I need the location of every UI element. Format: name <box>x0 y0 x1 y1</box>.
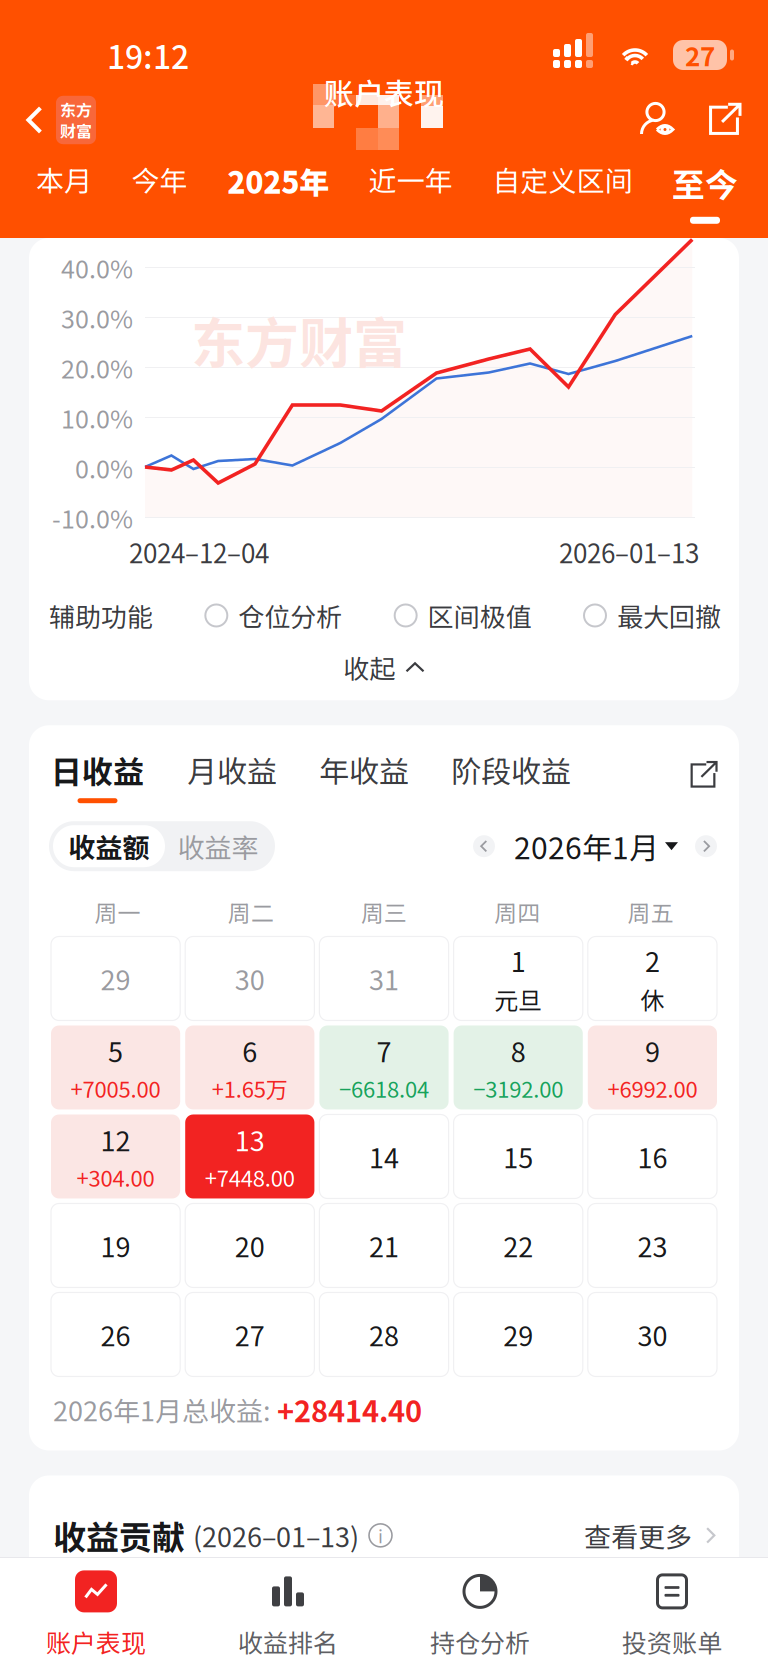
button[interactable]: 5 <box>51 1025 180 1109</box>
staticText: 收益排名 <box>238 1623 338 1660</box>
staticText: 今年 <box>132 159 188 199</box>
staticText: −3192.00 <box>473 1072 563 1104</box>
staticText: 元旦 <box>494 982 542 1016</box>
staticText: 2024–12–04 <box>129 533 269 571</box>
staticText: −6618.04 <box>339 1072 429 1104</box>
button[interactable]: 查看更多 <box>584 1516 719 1555</box>
staticText: 20 <box>235 1226 265 1265</box>
staticText: 6 <box>242 1031 257 1070</box>
button[interactable]: 19 <box>51 1203 180 1287</box>
button[interactable]: 12 <box>51 1114 180 1198</box>
button[interactable]: 2 <box>588 936 717 1020</box>
button[interactable]: Share <box>696 90 752 150</box>
staticText: 19:12 <box>107 32 189 78</box>
button[interactable]: 28 <box>319 1292 449 1376</box>
button[interactable]: 投资账单 <box>576 1558 768 1670</box>
button[interactable]: Account <box>630 90 686 150</box>
button[interactable]: 9 <box>588 1025 717 1109</box>
staticText: 至今 <box>672 159 738 207</box>
staticText: 0.0% <box>75 449 133 486</box>
button[interactable]: 阶段收益 <box>451 748 571 802</box>
staticText: 投资账单 <box>622 1623 722 1660</box>
button[interactable]: 收益额 <box>53 825 165 867</box>
button[interactable]: 23 <box>588 1203 717 1287</box>
staticText: 31 <box>369 959 399 998</box>
button[interactable]: 日收益 <box>51 747 144 803</box>
button[interactable]: 1 <box>454 936 583 1020</box>
button[interactable]: 21 <box>319 1203 449 1287</box>
staticText: 22 <box>503 1226 533 1265</box>
button[interactable]: 至今 <box>672 159 738 224</box>
button[interactable]: 2025年 <box>227 159 329 202</box>
button[interactable]: 今年 <box>132 159 188 199</box>
button[interactable]: 30 <box>185 936 314 1020</box>
staticText: i <box>378 1522 383 1548</box>
staticText: 28 <box>369 1315 399 1354</box>
button[interactable]: 收益排名 <box>192 1558 384 1670</box>
staticText: -10.0% <box>52 499 133 536</box>
staticText: 周一 <box>95 895 141 928</box>
staticText: 仓位分析 <box>238 597 342 634</box>
button[interactable]: 2026年1月 <box>473 824 717 868</box>
button[interactable]: 8 <box>454 1025 583 1109</box>
button[interactable]: 收起 <box>29 634 739 700</box>
button[interactable]: 29 <box>454 1292 583 1376</box>
staticText: 辅助功能 <box>49 597 153 634</box>
staticText: 26 <box>101 1315 131 1354</box>
staticText: 30 <box>637 1315 667 1354</box>
staticText: 账户表现 <box>46 1623 146 1660</box>
button[interactable]: 近一年 <box>369 159 453 199</box>
button[interactable]: 月收益 <box>187 748 277 802</box>
staticText: 8 <box>511 1031 526 1070</box>
staticText: 周二 <box>228 895 274 928</box>
button[interactable]: 30 <box>588 1292 717 1376</box>
staticText: 区间极值 <box>428 597 532 634</box>
staticText: 14 <box>369 1137 399 1176</box>
staticText: 2026–01–13 <box>559 533 699 571</box>
staticText: 周四 <box>494 895 540 928</box>
staticText: 日收益 <box>51 747 144 792</box>
button[interactable]: 29 <box>51 936 180 1020</box>
staticText: +304.00 <box>77 1161 155 1193</box>
button[interactable]: 14 <box>319 1114 449 1198</box>
button[interactable]: 31 <box>319 936 449 1020</box>
staticText: 阶段收益 <box>451 748 571 791</box>
staticText: 收起 <box>343 648 395 686</box>
staticText: 1 <box>511 941 526 980</box>
button[interactable]: 东方 <box>0 88 108 152</box>
staticText: 27 <box>685 36 715 74</box>
button[interactable]: 27 <box>185 1292 314 1376</box>
staticText: 查看更多 <box>584 1516 692 1555</box>
staticText: 周三 <box>361 895 407 928</box>
button[interactable]: 最大回撤 <box>584 597 721 634</box>
button[interactable]: 6 <box>185 1025 314 1109</box>
staticText: 13 <box>235 1120 265 1159</box>
staticText: 2025年 <box>227 159 329 202</box>
button[interactable]: 仓位分析 <box>205 597 342 634</box>
button[interactable]: 自定义区间 <box>492 159 632 199</box>
staticText: 9 <box>645 1031 660 1070</box>
button[interactable]: 22 <box>454 1203 583 1287</box>
button[interactable]: 持仓分析 <box>384 1558 576 1670</box>
button[interactable]: 7 <box>319 1025 449 1109</box>
button[interactable]: 15 <box>454 1114 583 1198</box>
button[interactable]: 20 <box>185 1203 314 1287</box>
button[interactable]: 本月 <box>36 159 92 199</box>
button[interactable]: 账户表现 <box>0 1558 192 1670</box>
staticText: 近一年 <box>369 159 453 199</box>
staticText: 10.0% <box>61 399 133 436</box>
button[interactable]: 13 <box>185 1114 314 1198</box>
button[interactable]: 区间极值 <box>395 597 532 634</box>
staticText: (2026–01–13) <box>193 1516 359 1555</box>
button[interactable]: 年收益 <box>319 748 409 802</box>
button[interactable]: 收益率 <box>165 825 271 867</box>
staticText: 40.0% <box>61 249 133 286</box>
staticText: 收益额 <box>68 827 149 866</box>
button[interactable]: 26 <box>51 1292 180 1376</box>
staticText: 29 <box>503 1315 533 1354</box>
staticText: 收益率 <box>177 827 258 866</box>
staticText: 收益贡献 <box>53 1511 185 1559</box>
staticText: 5 <box>108 1031 123 1070</box>
button[interactable]: Share income <box>681 753 725 797</box>
button[interactable]: 16 <box>588 1114 717 1198</box>
